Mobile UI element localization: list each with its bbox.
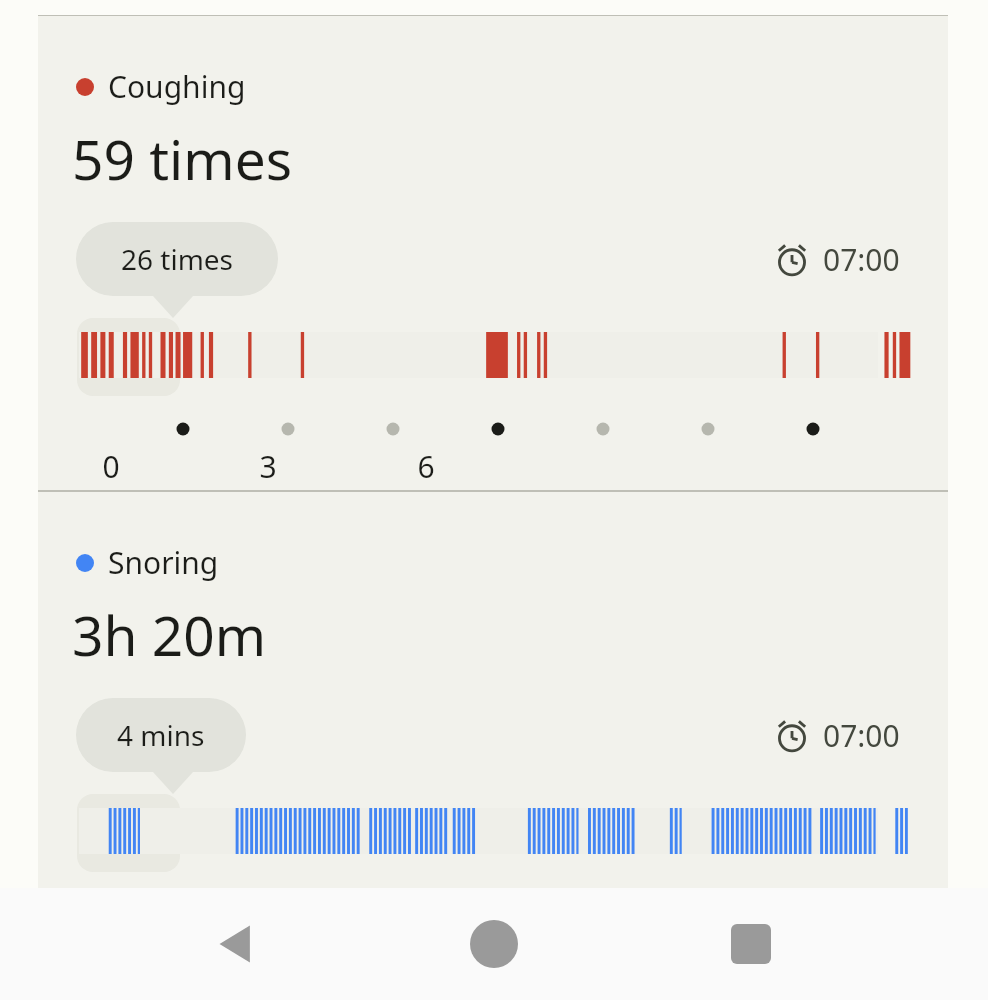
staticText: 07:00 — [823, 239, 900, 280]
button[interactable]: Alarm 07:00 — [773, 715, 900, 756]
staticText: Snoring — [108, 542, 219, 583]
staticText: 59 times — [72, 121, 293, 196]
button[interactable]: 26 times — [76, 222, 278, 296]
button[interactable]: Recents — [720, 913, 782, 975]
staticText: 07:00 — [823, 715, 900, 756]
button[interactable]: 4 mins — [76, 698, 246, 772]
staticText: 26 times — [121, 240, 234, 278]
button[interactable]: Alarm 07:00 — [773, 239, 900, 280]
staticText: 3 — [248, 446, 288, 487]
staticText: 4 mins — [117, 716, 205, 754]
staticText: 3h 20m — [72, 597, 267, 672]
staticText: 0 — [91, 446, 131, 487]
staticText: Coughing — [108, 66, 246, 107]
button[interactable]: Home — [463, 913, 525, 975]
staticText: 6 — [406, 446, 446, 487]
button[interactable]: Back — [206, 913, 268, 975]
